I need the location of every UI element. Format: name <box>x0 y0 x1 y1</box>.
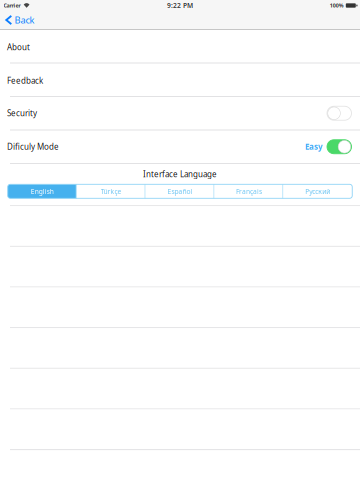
staticText: Interface Language <box>143 169 217 179</box>
staticText: 100% <box>330 2 344 9</box>
button[interactable]: Feedback <box>0 63 360 96</box>
staticText: Carrier <box>3 2 20 9</box>
staticText: Türkçe <box>101 187 122 196</box>
staticText: Русский <box>305 187 330 196</box>
staticText: Dificuly Mode <box>7 141 59 152</box>
button[interactable]: Русский <box>283 184 352 198</box>
button[interactable]: About <box>0 30 360 62</box>
staticText: 9:22 PM <box>167 1 193 10</box>
button[interactable]: Security, off <box>327 106 351 120</box>
staticText: Feedback <box>7 75 43 86</box>
staticText: About <box>7 42 30 52</box>
staticText: Security <box>7 108 37 118</box>
button[interactable]: Back <box>0 11 34 29</box>
staticText: Easy <box>305 141 323 152</box>
button[interactable]: Türkçe <box>77 184 146 198</box>
button[interactable]: English <box>8 184 77 198</box>
staticText: Français <box>236 187 262 196</box>
staticText: Back <box>14 14 34 26</box>
staticText: Español <box>167 187 192 196</box>
button[interactable]: Français <box>214 184 283 198</box>
button[interactable]: Español <box>146 184 214 198</box>
button[interactable]: Dificuly Mode, on <box>327 140 351 154</box>
staticText: English <box>31 187 54 196</box>
